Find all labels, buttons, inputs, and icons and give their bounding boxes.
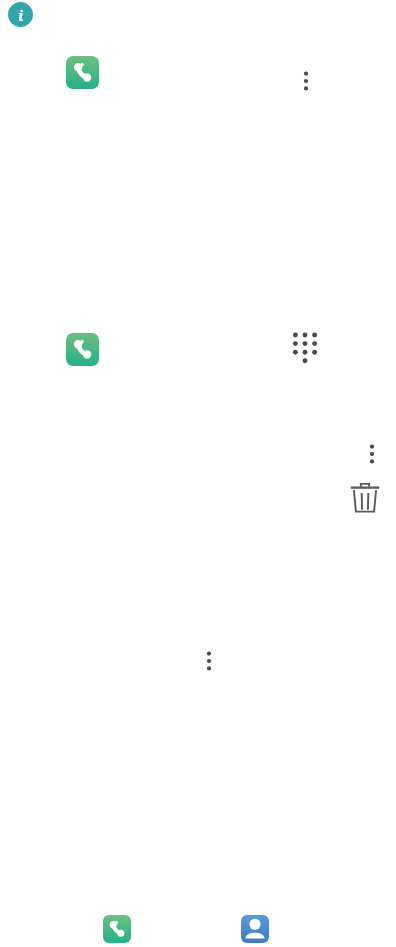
button[interactable]: More options [361,436,383,472]
button[interactable]: Phone tab [103,915,131,943]
button[interactable]: Dialpad [288,328,322,366]
button[interactable]: Delete [349,481,381,515]
button[interactable]: Phone [66,333,99,366]
button[interactable]: Contacts tab [241,915,269,943]
button[interactable]: More options [198,643,220,679]
staticText: i [18,5,24,25]
button[interactable]: Phone [66,56,99,89]
button[interactable]: Information [8,2,33,27]
button[interactable]: More options [295,63,317,99]
